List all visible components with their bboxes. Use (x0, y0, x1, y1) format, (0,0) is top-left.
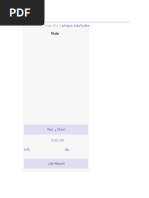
staticText: 9:00 AM (51, 138, 64, 142)
button[interactable]: Info (24, 148, 30, 152)
staticText: Info (24, 148, 30, 152)
button[interactable]: Go (65, 148, 69, 152)
staticText: campus.edu/notes (60, 24, 90, 28)
staticText: Go (65, 148, 69, 152)
staticText: Next (57, 127, 65, 131)
staticText: Prev (46, 127, 53, 131)
button[interactable]: Prev (24, 124, 88, 134)
staticText: • (54, 127, 56, 131)
staticText: PDF (9, 6, 30, 19)
button[interactable]: Lab Report (24, 158, 88, 168)
staticText: Note (51, 31, 59, 36)
staticText: From the (44, 24, 58, 28)
staticText: Lab Report (47, 161, 64, 165)
button[interactable]: PDF document (0, 0, 44, 25)
